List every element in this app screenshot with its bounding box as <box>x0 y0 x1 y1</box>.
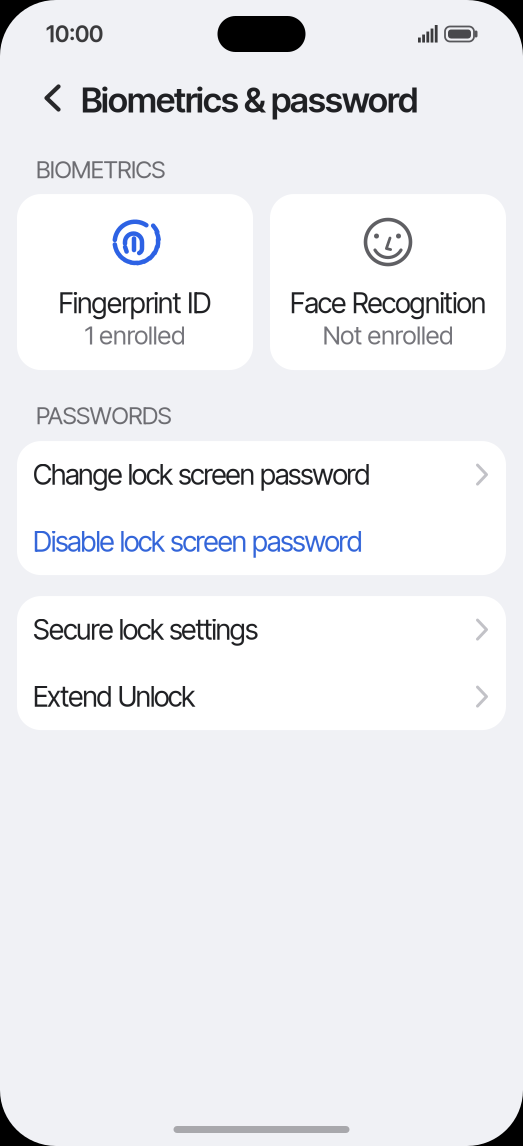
staticText: 1 enrolled <box>85 320 185 351</box>
staticText: Extend Unlock <box>33 680 195 713</box>
staticText: Secure lock settings <box>33 613 258 646</box>
staticText: Disable lock screen password <box>33 525 363 558</box>
staticText: Change lock screen password <box>33 458 371 491</box>
button[interactable]: Fingerprint ID <box>17 194 253 370</box>
button[interactable]: Secure lock settings <box>17 596 506 663</box>
staticText: PASSWORDS <box>36 401 172 430</box>
staticText: Face Recognition <box>290 286 486 320</box>
staticText: Fingerprint ID <box>58 286 212 320</box>
staticText: 10:00 <box>46 20 103 48</box>
button[interactable]: Face Recognition <box>270 194 506 370</box>
button[interactable]: Back <box>36 76 70 120</box>
button[interactable]: Extend Unlock <box>17 663 506 730</box>
button[interactable]: Change lock screen password <box>17 441 506 508</box>
staticText: Not enrolled <box>323 320 453 351</box>
staticText: Biometrics & password <box>81 79 418 121</box>
staticText: BIOMETRICS <box>36 155 165 184</box>
button[interactable]: Disable lock screen password <box>17 508 506 575</box>
